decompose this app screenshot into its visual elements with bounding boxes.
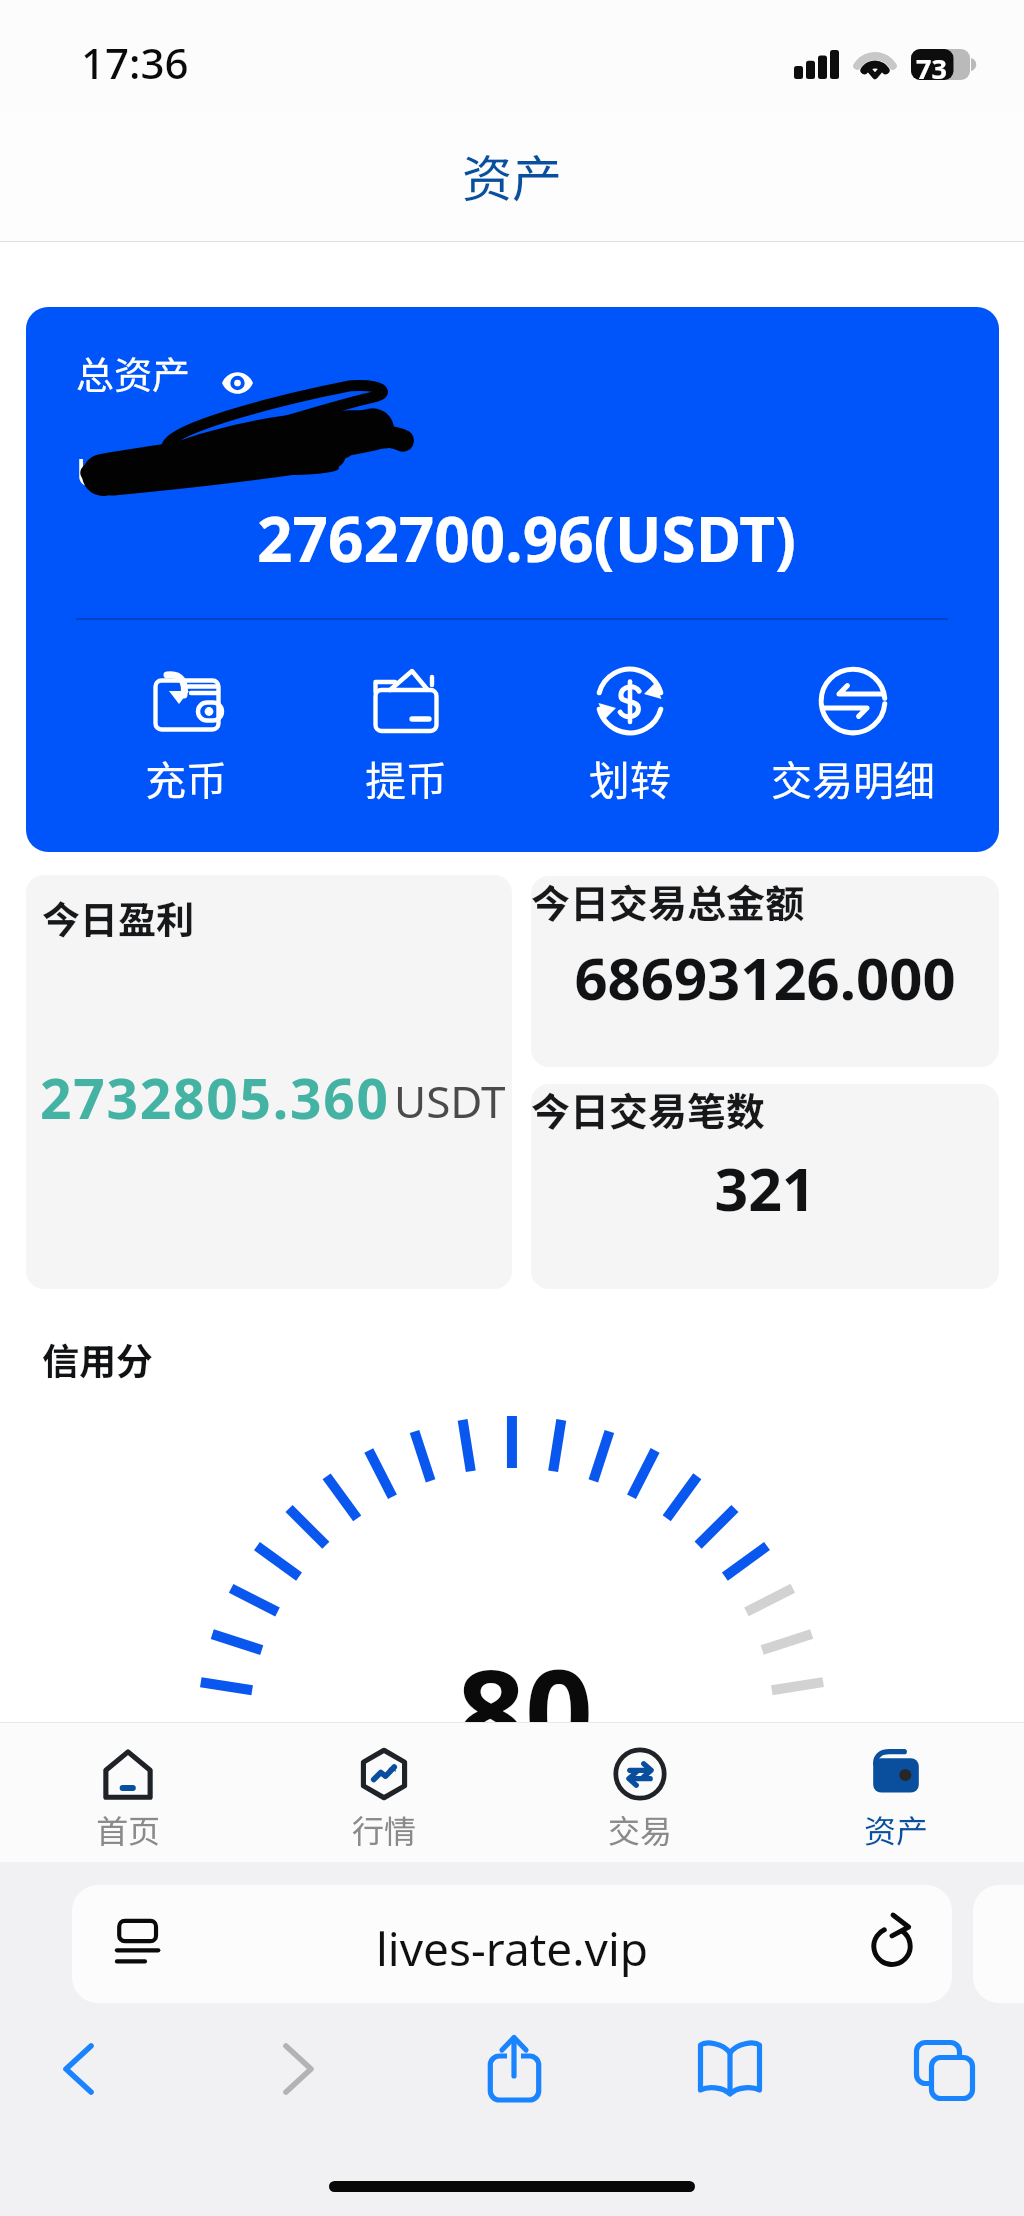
staticText: 资产 bbox=[864, 1806, 929, 1852]
button[interactable]: 交易明细 bbox=[743, 666, 963, 807]
button[interactable]: Forward bbox=[286, 2046, 336, 2106]
button[interactable]: 提币 bbox=[296, 666, 516, 807]
button[interactable]: Page settings bbox=[116, 1920, 162, 1966]
staticText: 充币 bbox=[145, 748, 227, 807]
staticText: USDT bbox=[394, 1071, 506, 1131]
button[interactable]: Tabs bbox=[914, 2040, 976, 2100]
button[interactable] bbox=[531, 1084, 999, 1289]
staticText: 80 bbox=[13, 1629, 1024, 1791]
button[interactable]: Bookmarks bbox=[698, 2042, 762, 2096]
staticText: 资产 bbox=[0, 139, 1024, 211]
staticText: 总资产 bbox=[76, 345, 191, 400]
button[interactable]: Reload bbox=[866, 1914, 918, 1966]
staticText: 今日盈利 bbox=[42, 890, 195, 945]
staticText: 2732805.360 bbox=[40, 1060, 390, 1135]
staticText: 17:36 bbox=[81, 34, 189, 91]
staticText: 提币 bbox=[365, 748, 447, 807]
staticText: 73 bbox=[916, 50, 947, 87]
button[interactable]: Toggle balance visibility bbox=[222, 371, 253, 395]
button[interactable]: 资产 bbox=[768, 1722, 1024, 1862]
button[interactable] bbox=[26, 875, 512, 1289]
staticText: 行情 bbox=[352, 1806, 417, 1852]
button[interactable]: 交易 bbox=[512, 1722, 768, 1862]
staticText: 今日交易总金额 bbox=[531, 873, 805, 929]
staticText: 交易 bbox=[608, 1806, 673, 1852]
button[interactable]: 行情 bbox=[256, 1722, 512, 1862]
staticText: 首页 bbox=[96, 1806, 161, 1852]
staticText: 321 bbox=[531, 1148, 999, 1228]
button[interactable]: Back bbox=[66, 2046, 116, 2106]
button[interactable]: 首页 bbox=[0, 1722, 256, 1862]
button[interactable]: lives-rate.vip bbox=[72, 1885, 952, 2003]
button[interactable]: 充币 bbox=[76, 666, 296, 807]
staticText: 2762700.96(USDT) bbox=[40, 496, 999, 580]
button[interactable]: Share bbox=[489, 2034, 541, 2102]
button[interactable] bbox=[531, 876, 999, 1067]
staticText: lives-rate.vip bbox=[72, 1917, 952, 1980]
staticText: UID bbox=[76, 445, 145, 497]
staticText: 信用分 bbox=[42, 1332, 153, 1386]
button[interactable]: 划转 bbox=[520, 666, 740, 807]
staticText: 交易明细 bbox=[771, 748, 935, 807]
staticText: 68693126.000 bbox=[531, 938, 999, 1017]
staticText: 划转 bbox=[589, 748, 671, 807]
staticText: 今日交易笔数 bbox=[531, 1081, 766, 1137]
